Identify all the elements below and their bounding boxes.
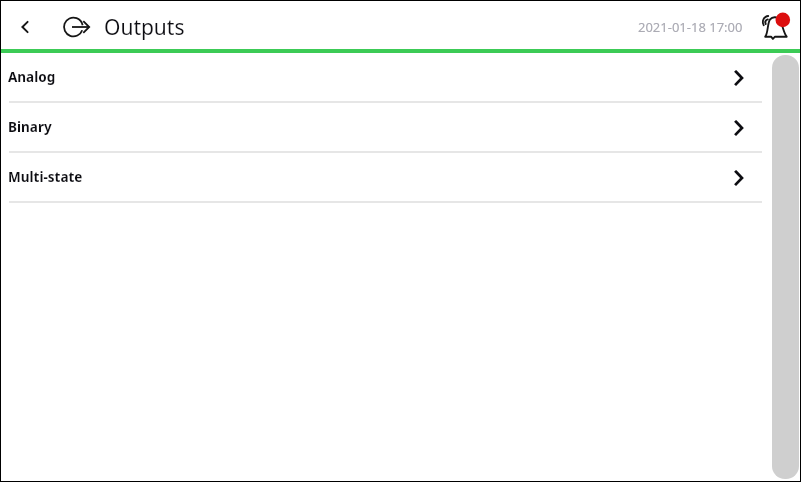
- button[interactable]: Alarms: [756, 1, 792, 49]
- staticText: 2021-01-18 17:00: [638, 18, 743, 36]
- button[interactable]: Binary: [1, 103, 800, 151]
- button[interactable]: Analog: [1, 53, 800, 101]
- button[interactable]: Multi-state: [1, 153, 800, 201]
- staticText: Outputs: [104, 13, 185, 42]
- button[interactable]: Back: [1, 1, 48, 49]
- staticText: Analog: [8, 68, 56, 86]
- button[interactable]: Scrollbar: [772, 55, 799, 479]
- staticText: Binary: [8, 118, 52, 136]
- staticText: Multi-state: [8, 168, 83, 186]
